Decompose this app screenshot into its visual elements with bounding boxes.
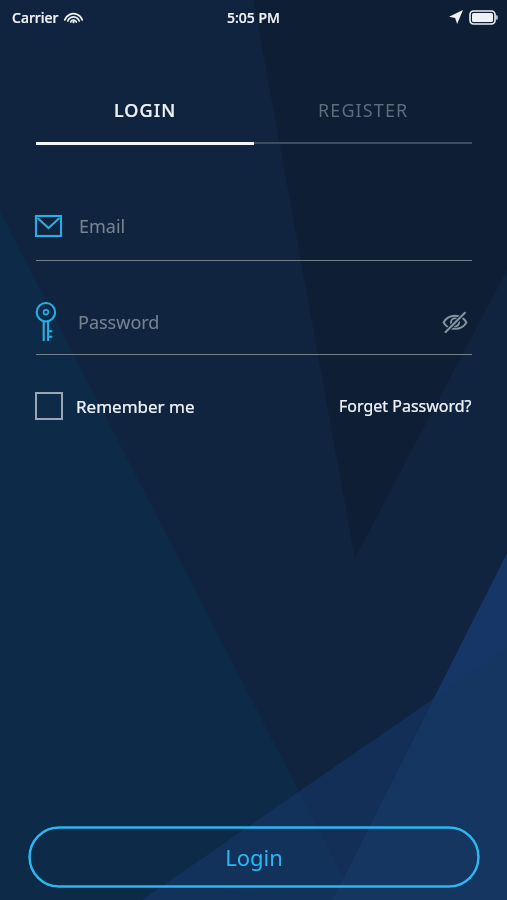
staticText: REGISTER (318, 98, 409, 123)
staticText: LOGIN (114, 98, 177, 123)
staticText: 5:05 PM (227, 8, 280, 27)
staticText: Password (78, 310, 438, 335)
staticText: Forget Password? (339, 395, 472, 417)
staticText: Email (79, 214, 126, 239)
button[interactable]: Show password (438, 305, 472, 339)
button[interactable]: Email (36, 205, 472, 261)
staticText: Login (225, 842, 283, 872)
button[interactable]: Login (28, 826, 480, 888)
button[interactable]: LOGIN (36, 98, 254, 123)
button[interactable]: REGISTER (254, 98, 472, 123)
button[interactable]: Remember me (36, 393, 195, 419)
staticText: Remember me (76, 395, 195, 418)
staticText: Carrier (12, 8, 59, 27)
button[interactable]: Forget Password? (339, 395, 472, 417)
